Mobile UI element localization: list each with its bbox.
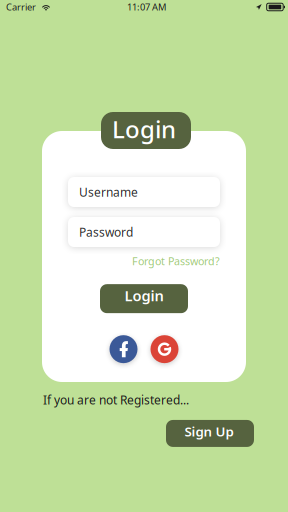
staticText: Username <box>79 184 138 200</box>
staticText: If you are not Registered... <box>43 392 189 408</box>
staticText: Login <box>112 113 176 145</box>
staticText: Sign Up <box>184 423 233 440</box>
staticText: Login <box>124 286 163 305</box>
button[interactable]: Login <box>101 112 191 149</box>
button[interactable]: Sign in with Facebook <box>109 335 137 363</box>
button[interactable]: Forgot Password? <box>132 254 220 268</box>
button[interactable]: Sign in with Google <box>150 335 178 363</box>
staticText: Password <box>79 224 133 240</box>
staticText: 11:07 AM <box>127 1 166 13</box>
staticText: Carrier <box>6 1 36 13</box>
button[interactable]: Sign Up <box>166 420 254 447</box>
staticText: Forgot Password? <box>132 254 220 268</box>
button[interactable]: Login <box>100 284 188 313</box>
